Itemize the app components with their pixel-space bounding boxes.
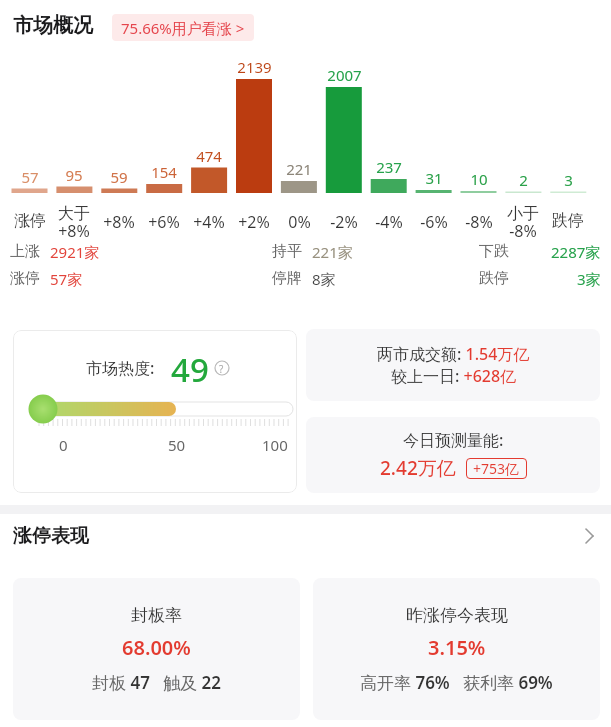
staticText: 市场热度: [86, 357, 155, 379]
staticText: 57 [21, 167, 39, 187]
staticText: 停牌 [272, 269, 302, 288]
staticText: 2 [519, 170, 528, 190]
staticText: 2.42万亿 [380, 455, 456, 481]
staticText: +4% [193, 211, 225, 233]
button[interactable]: 两市成交额: 1.54万亿 [306, 329, 600, 401]
staticText: 今日预测量能: [403, 429, 504, 451]
staticText: 75.66%用户看涨 > [121, 18, 245, 38]
staticText: 涨停表现 [13, 524, 89, 548]
staticText: 3.15% [428, 634, 486, 661]
staticText: 0 [59, 435, 68, 455]
staticText: 封板率 [131, 605, 182, 626]
staticText: 221家 [312, 242, 353, 262]
button[interactable]: 75.66%用户看涨 > [112, 14, 254, 41]
staticText: 封板 47 触及 22 [92, 671, 221, 694]
staticText: 237 [376, 157, 402, 177]
staticText: 50 [168, 435, 186, 455]
button[interactable]: 昨涨停今表现 [313, 578, 600, 720]
staticText: 较上一日: +628亿 [391, 365, 517, 387]
staticText: -2% [330, 211, 358, 233]
staticText: +753亿 [473, 459, 520, 478]
button[interactable]: 封板率 [13, 578, 300, 720]
staticText: 两市成交额: 1.54万亿 [377, 343, 530, 365]
staticText: 2921家 [50, 242, 100, 262]
staticText: 3 [564, 170, 573, 190]
staticText: 上涨 [10, 242, 40, 261]
staticText: 8家 [312, 269, 336, 289]
staticText: -8% [465, 211, 493, 233]
staticText: 跌停 [479, 269, 509, 288]
staticText: 2007 [327, 65, 362, 85]
staticText: 涨停 [10, 269, 40, 288]
staticText: 持平 [272, 242, 302, 261]
staticText: 高开率 76% 获利率 69% [360, 671, 553, 694]
staticText: 跌停 [552, 211, 584, 231]
staticText: 95 [65, 165, 83, 185]
staticText: 68.00% [122, 634, 191, 661]
staticText: 221 [286, 159, 312, 179]
staticText: ? [219, 362, 224, 376]
staticText: -4% [375, 211, 403, 233]
button[interactable]: 市场热度: [13, 330, 297, 493]
staticText: 154 [151, 162, 177, 182]
staticText: +2% [238, 211, 270, 233]
staticText: 大于 +8% [58, 204, 90, 242]
staticText: -6% [420, 211, 448, 233]
staticText: 小于 -8% [507, 204, 539, 242]
staticText: 市场概况 [13, 13, 93, 38]
staticText: 涨停 [14, 211, 46, 231]
staticText: 474 [196, 146, 222, 166]
staticText: 0% [288, 211, 311, 233]
staticText: 昨涨停今表现 [406, 605, 508, 626]
staticText: 10 [470, 169, 488, 189]
staticText: 31 [425, 168, 443, 188]
staticText: +8% [103, 211, 135, 233]
staticText: 100 [262, 435, 288, 455]
staticText: 2287家 [551, 242, 601, 262]
button[interactable]: 涨停表现 [0, 518, 611, 556]
staticText: +6% [148, 211, 180, 233]
staticText: 59 [110, 167, 128, 187]
staticText: 49 [171, 347, 209, 392]
button[interactable]: 今日预测量能: [306, 417, 600, 493]
staticText: 2139 [237, 57, 272, 77]
staticText: 57家 [50, 269, 83, 289]
staticText: 下跌 [479, 242, 509, 261]
staticText: 3家 [577, 269, 601, 289]
